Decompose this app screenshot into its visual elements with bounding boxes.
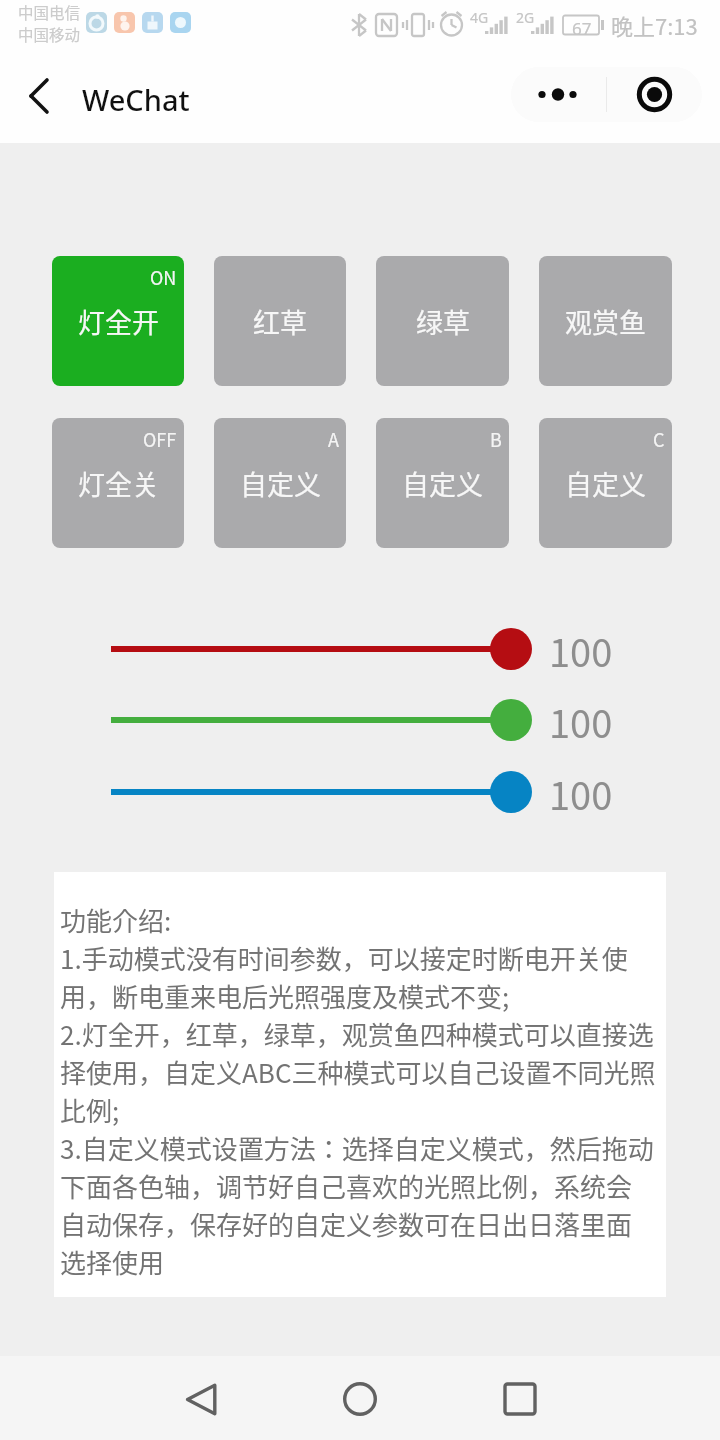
- staticText: 67: [572, 17, 592, 40]
- staticText: A: [328, 426, 339, 452]
- staticText: ON: [150, 264, 177, 290]
- staticText: 比例;: [60, 1091, 120, 1129]
- staticText: 自定义: [240, 464, 321, 503]
- staticText: 4G: [470, 8, 489, 27]
- button[interactable]: Back: [160, 1359, 240, 1439]
- staticText: 选择使用: [60, 1243, 165, 1281]
- staticText: 100: [549, 694, 613, 746]
- button[interactable]: A: [214, 418, 346, 548]
- staticText: 灯全开: [78, 302, 159, 341]
- staticText: 3.自定义模式设置方法：选择自定义模式，然后拖动: [60, 1129, 654, 1167]
- staticText: 100: [549, 623, 613, 675]
- button[interactable]: Brightness slider: [90, 766, 532, 818]
- staticText: OFF: [143, 426, 177, 452]
- staticText: 晚上7:13: [611, 9, 698, 41]
- staticText: 功能介绍:: [60, 901, 172, 939]
- staticText: 自动保存，保存好的自定义参数可在日出日落里面: [60, 1205, 633, 1243]
- staticText: 观赏鱼: [565, 302, 646, 341]
- staticText: 中国移动: [18, 23, 81, 45]
- staticText: 红草: [253, 302, 307, 341]
- staticText: WeChat: [82, 80, 190, 119]
- button[interactable]: OFF: [52, 418, 184, 548]
- staticText: 灯全关: [78, 464, 159, 503]
- staticText: B: [490, 426, 502, 452]
- button[interactable]: Brightness slider: [90, 623, 532, 675]
- button[interactable]: 绿草: [376, 256, 509, 386]
- button[interactable]: Close mini program: [607, 67, 702, 122]
- staticText: 绿草: [416, 302, 470, 341]
- button[interactable]: Back: [9, 65, 71, 127]
- button[interactable]: ON: [52, 256, 184, 386]
- staticText: C: [653, 426, 665, 452]
- button[interactable]: Recent apps: [480, 1359, 560, 1439]
- staticText: 2.灯全开，红草，绿草，观赏鱼四种模式可以直接选: [60, 1015, 654, 1053]
- button[interactable]: B: [376, 418, 509, 548]
- button[interactable]: 观赏鱼: [539, 256, 672, 386]
- button[interactable]: C: [539, 418, 672, 548]
- staticText: 下面各色轴，调节好自己喜欢的光照比例，系统会: [60, 1167, 633, 1205]
- staticText: 自定义: [565, 464, 646, 503]
- staticText: 中国电信: [18, 1, 81, 23]
- staticText: 用，断电重来电后光照强度及模式不变;: [60, 977, 510, 1015]
- staticText: 100: [549, 766, 613, 818]
- button[interactable]: Home: [320, 1359, 400, 1439]
- staticText: 择使用，自定义ABC三种模式可以自己设置不同光照: [60, 1053, 656, 1091]
- button[interactable]: 红草: [214, 256, 346, 386]
- button[interactable]: Brightness slider: [90, 694, 532, 746]
- staticText: 2G: [516, 8, 535, 27]
- button[interactable]: More options: [511, 67, 606, 122]
- staticText: 1.手动模式没有时间参数，可以接定时断电开关使: [60, 939, 628, 977]
- staticText: 自定义: [402, 464, 483, 503]
